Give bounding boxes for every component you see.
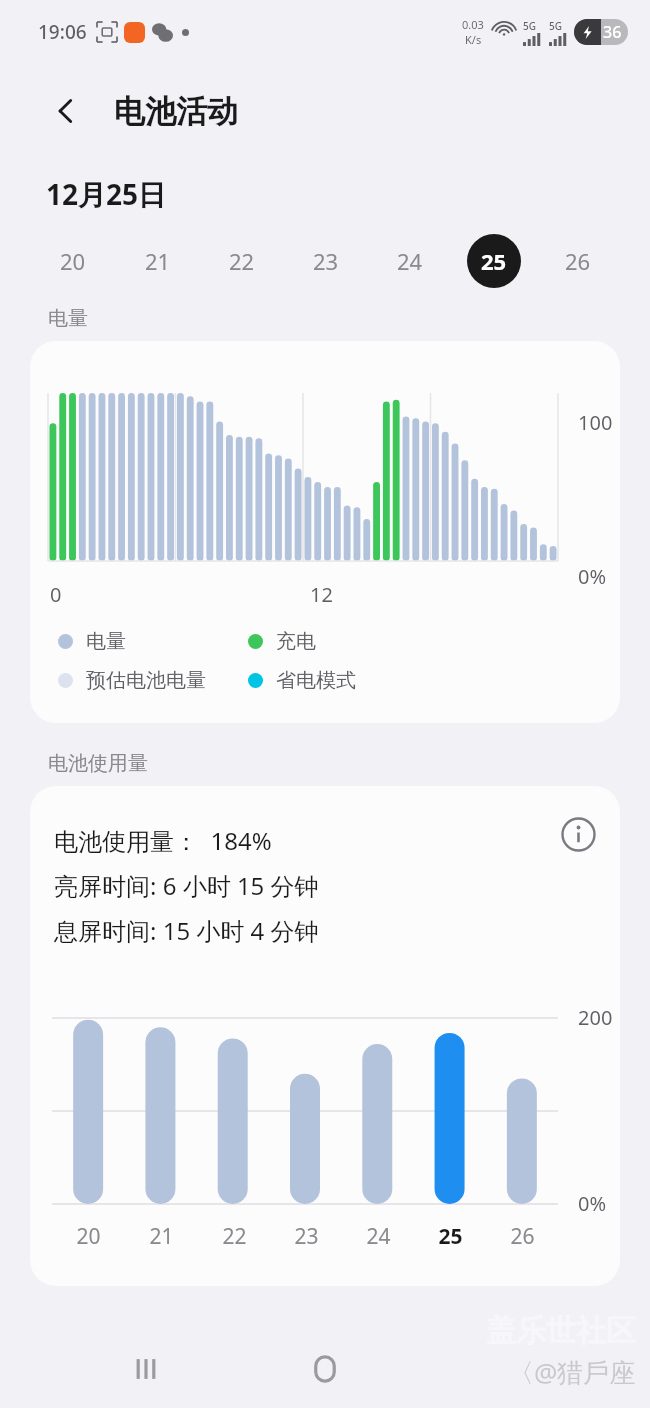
staticText: 21 [149,1222,174,1251]
button[interactable]: 23 [284,230,368,292]
staticText: 23 [294,1222,319,1251]
staticText: 21 [145,246,171,276]
staticText: 5G [523,19,536,33]
staticText: 电池使用量 [48,751,148,776]
staticText: 0 [50,581,62,608]
staticText: 12 [310,581,333,608]
staticText: 22 [229,246,255,276]
button[interactable]: 22 [200,230,284,292]
staticText: 26 [510,1222,535,1251]
button[interactable]: 电池使用量： 184% [30,786,620,1286]
button[interactable]: 25 [452,230,536,292]
button[interactable]: 21 [115,230,200,292]
staticText: 0% [578,563,607,590]
staticText: 25 [481,246,507,276]
staticText: 亮屏时间: 6 小时 15 分钟 [54,869,319,902]
button[interactable]: 最近任务 [118,1341,174,1397]
staticText: 充电 [276,629,316,654]
staticText: 0% [578,1190,607,1217]
staticText: 26 [565,246,591,276]
staticText: 100 [578,409,613,436]
staticText: 24 [366,1222,391,1251]
staticText: 24 [397,246,423,276]
staticText: 23 [313,246,339,276]
staticText: 200 [578,1004,613,1031]
staticText: 〈@猎戶座 [508,1354,636,1390]
button[interactable]: 主页 [297,1341,353,1397]
staticText: 22 [222,1222,247,1251]
staticText: 12月25日 [46,175,167,213]
staticText: 20 [60,246,86,276]
button[interactable]: 信息 [552,808,604,860]
staticText: 电量 [48,306,88,331]
button[interactable]: 100 [30,341,620,723]
staticText: 36 [603,21,622,43]
staticText: 省电模式 [276,668,356,693]
button[interactable]: 返回 [40,85,92,137]
staticText: 25 [438,1222,463,1251]
button[interactable]: 20 [30,230,115,292]
staticText: 电池活动 [114,92,238,131]
button[interactable]: 26 [536,230,620,292]
staticText: 电池使用量： 184% [54,824,272,857]
staticText: 20 [76,1222,101,1251]
button[interactable]: 24 [368,230,452,292]
staticText: K/s [465,32,482,47]
staticText: 电量 [86,629,126,654]
staticText: 预估电池电量 [86,668,206,693]
staticText: 0.03 [462,17,484,32]
staticText: 5G [549,19,562,33]
staticText: 息屏时间: 15 小时 4 分钟 [54,914,319,947]
staticText: 19:06 [38,19,87,45]
